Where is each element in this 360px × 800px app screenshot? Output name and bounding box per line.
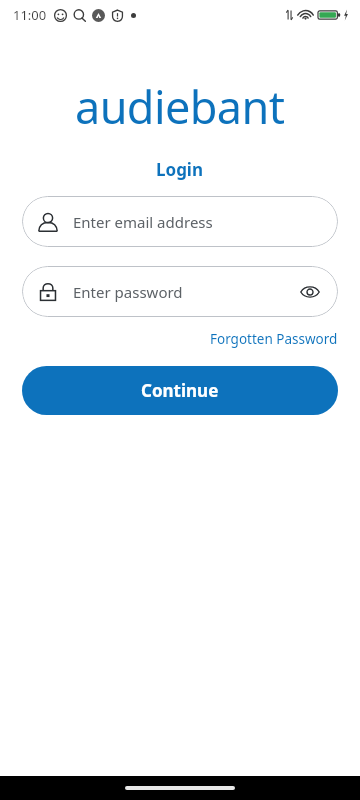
staticText: Login (156, 158, 204, 181)
button[interactable]: Show password (298, 280, 322, 304)
button[interactable]: Forgotten Password (207, 325, 341, 353)
button[interactable]: Continue (22, 366, 338, 415)
staticText: Enter email address (73, 212, 213, 232)
staticText: audiebant (75, 76, 285, 137)
staticText: Continue (141, 379, 219, 402)
staticText: Enter password (73, 282, 183, 302)
staticText: Forgotten Password (210, 330, 338, 348)
button[interactable]: Enter email address (22, 196, 338, 247)
button[interactable]: Enter password (22, 266, 338, 317)
staticText: 11:00 (13, 6, 47, 24)
